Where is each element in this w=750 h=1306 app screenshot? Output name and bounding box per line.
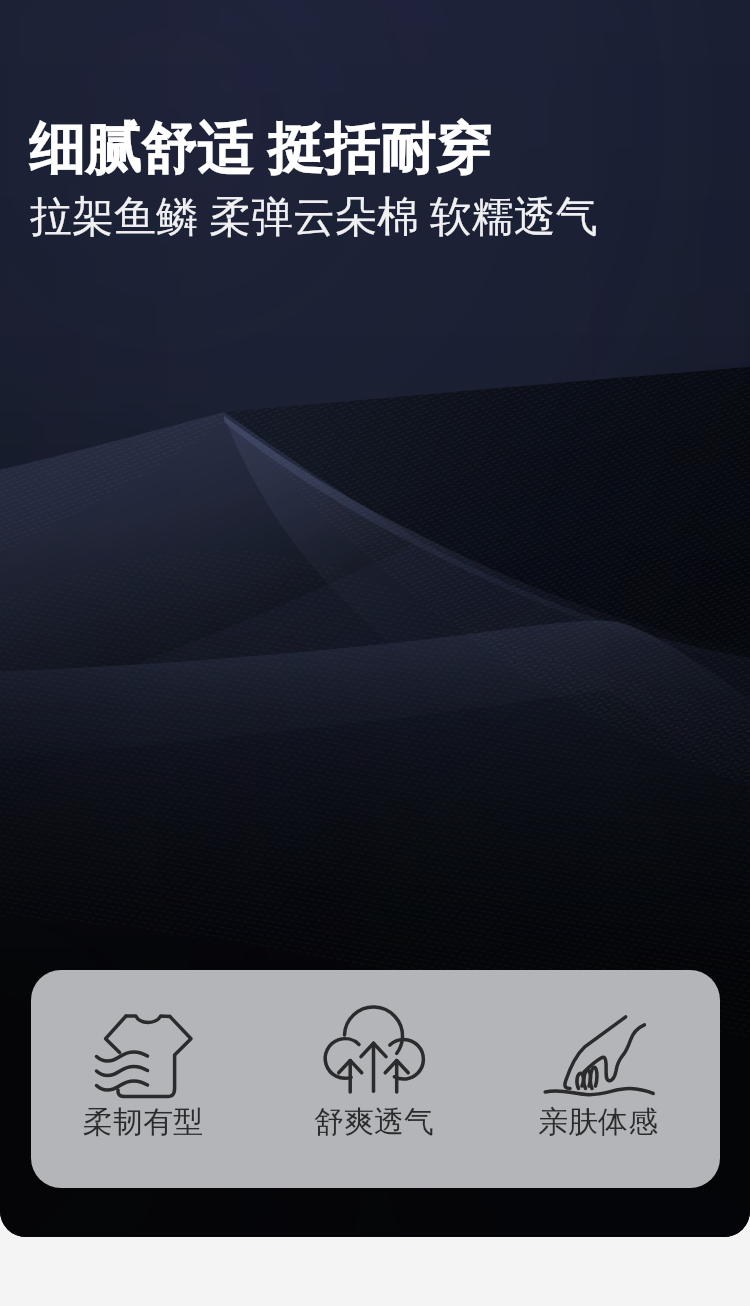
other: 柔韧有型 (83, 1000, 203, 1100)
button[interactable]: 亲肤体感 (518, 1000, 678, 1141)
button[interactable]: 舒爽透气 (294, 1000, 454, 1141)
button[interactable]: 柔韧有型 (63, 1000, 223, 1141)
staticText: 细腻舒适 挺括耐穿 (29, 108, 492, 184)
staticText: 亲肤体感 (538, 1103, 658, 1141)
other: 亲肤体感 (538, 1000, 658, 1100)
staticText: 舒爽透气 (314, 1103, 434, 1141)
staticText: 拉架鱼鳞 柔弹云朵棉 软糯透气 (30, 186, 598, 243)
other: 舒爽透气 (314, 1000, 434, 1100)
staticText: 柔韧有型 (83, 1103, 203, 1141)
